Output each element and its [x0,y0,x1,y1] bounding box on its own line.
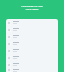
other: Category icon [7,63,11,67]
other: Category icon [7,42,11,46]
other: Category icon [7,28,11,32]
staticText: CATEGORIES TO VISIT [0,5,64,8]
button[interactable]: Category icon [6,33,58,40]
button[interactable]: Category icon [6,19,58,26]
other: Category icon [7,56,11,60]
other: Category icon [7,35,11,39]
other: Category icon [7,21,11,25]
button[interactable]: Category icon [6,61,58,68]
button[interactable]: Category icon [6,26,58,33]
other: Category icon [7,68,11,72]
button[interactable]: Category icon [6,47,58,54]
staticText: YOUR NEEDS [0,8,64,11]
button[interactable]: Category icon [6,40,58,47]
other: Category icon [7,49,11,53]
button[interactable]: Category icon [6,68,58,72]
button[interactable]: Category icon [6,54,58,61]
